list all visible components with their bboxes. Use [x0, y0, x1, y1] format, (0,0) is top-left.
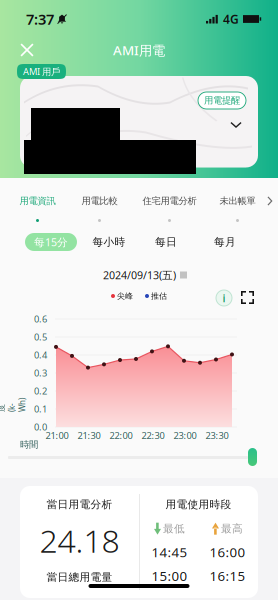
button[interactable]: 每月	[199, 233, 251, 251]
staticText: 每15分	[34, 235, 68, 249]
staticText: 0.0	[34, 421, 47, 433]
button[interactable]: More tabs	[264, 189, 276, 213]
staticText: 用電比較	[81, 195, 117, 207]
staticText: 當日總用電量	[46, 571, 112, 584]
staticText: 22:30	[141, 429, 164, 442]
staticText: 用電提醒	[204, 95, 240, 106]
staticText: 15:00	[151, 567, 187, 585]
button[interactable]: 每小時	[83, 233, 135, 251]
staticText: 最低	[163, 522, 185, 535]
staticText: 23:00	[173, 429, 196, 442]
staticText: 每日	[155, 235, 177, 248]
staticText: 住宅用電分析	[142, 195, 196, 207]
staticText: i	[222, 291, 225, 305]
button[interactable]: Full screen	[241, 291, 254, 304]
button[interactable]: 每15分	[25, 233, 77, 251]
staticText: 22:00	[109, 429, 132, 442]
staticText: 0.3	[34, 367, 47, 379]
staticText: 最高	[221, 522, 243, 535]
staticText: 時間	[20, 439, 38, 450]
staticText: 14:45	[151, 543, 187, 561]
button[interactable]: AMI 用戶	[17, 64, 66, 79]
staticText: 0.1	[34, 403, 47, 415]
staticText: 推估	[151, 291, 167, 301]
button[interactable]: 住宅用電分析	[139, 186, 200, 226]
staticText: 16:00	[209, 543, 245, 561]
staticText: 用電使用時段	[165, 498, 231, 511]
staticText: AMI用電	[113, 41, 165, 59]
staticText: 0.5	[34, 331, 47, 343]
staticText: 4G	[223, 11, 239, 27]
staticText: 21:00	[45, 429, 68, 442]
button[interactable]: Close	[14, 37, 40, 63]
staticText: 7:37	[26, 9, 54, 29]
staticText: 0.2	[34, 385, 47, 397]
button[interactable]: Information	[216, 290, 232, 306]
staticText: 0.6	[34, 313, 47, 325]
staticText: 21:30	[77, 429, 100, 442]
staticText: 未出帳單	[219, 195, 255, 207]
button[interactable]: 用電比較	[79, 186, 120, 226]
staticText: 2024/09/13(五)	[103, 268, 176, 282]
staticText: 23:30	[205, 429, 228, 442]
staticText: 每小時	[92, 235, 125, 248]
staticText: 用電資訊	[19, 195, 55, 207]
staticText: 16:15	[209, 567, 245, 585]
button[interactable]: 未出帳單	[217, 186, 258, 226]
staticText: AMI 用戶	[23, 65, 60, 78]
staticText: 0.4	[34, 349, 47, 361]
button[interactable]: Expand account	[225, 116, 247, 134]
button[interactable]: 每日	[140, 233, 192, 251]
staticText: 當日用電分析	[46, 498, 112, 511]
button[interactable]: 用電提醒	[198, 92, 246, 109]
button[interactable]: 用電資訊	[17, 186, 58, 226]
staticText: 24.18	[39, 519, 119, 562]
staticText: 每月	[214, 235, 236, 248]
staticText: 尖峰	[117, 291, 133, 301]
staticText: 度(kWh)	[5, 389, 19, 421]
